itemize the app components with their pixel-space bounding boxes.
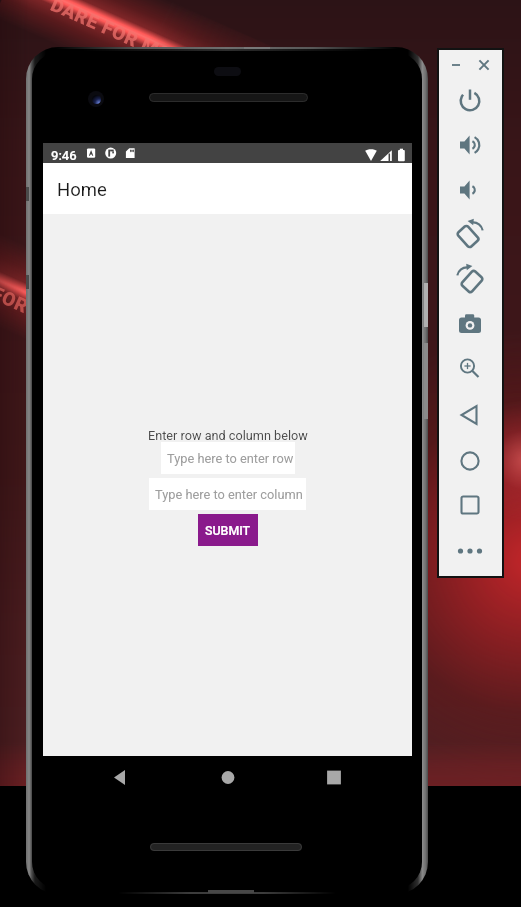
staticText: 9:46 (51, 148, 77, 163)
button[interactable]: More options (447, 529, 493, 573)
staticText: DARE FOR MORE (0, 259, 88, 342)
button[interactable]: Type here to enter column (149, 478, 306, 510)
staticText: SUBMIT (205, 523, 251, 538)
button[interactable]: Zoom (447, 347, 493, 391)
staticText: Home (57, 179, 107, 201)
button[interactable]: Home (447, 439, 493, 483)
staticText: Enter row and column below (148, 428, 308, 443)
button[interactable]: Overview (447, 483, 493, 527)
button[interactable]: Home (211, 758, 245, 786)
button[interactable]: Rotate left (447, 213, 493, 257)
button[interactable]: Minimize (449, 55, 463, 75)
button[interactable]: Take screenshot (447, 302, 493, 346)
button[interactable]: Volume down (447, 168, 493, 212)
button[interactable]: Type here to enter row (161, 442, 295, 474)
button[interactable]: SUBMIT (198, 514, 258, 546)
button[interactable]: Rotate right (447, 258, 493, 302)
button[interactable]: Home (43, 163, 412, 214)
staticText: DARE FOR MORE (47, 0, 198, 76)
staticText: Type here to enter column (155, 487, 303, 502)
button[interactable]: Power (447, 79, 493, 123)
button[interactable]: Recent apps (317, 758, 351, 786)
button[interactable]: Volume up (447, 123, 493, 167)
staticText: Type here to enter row (167, 451, 294, 466)
button[interactable]: Close (477, 55, 491, 75)
button[interactable]: Back (447, 393, 493, 437)
button[interactable]: Back (98, 758, 138, 786)
